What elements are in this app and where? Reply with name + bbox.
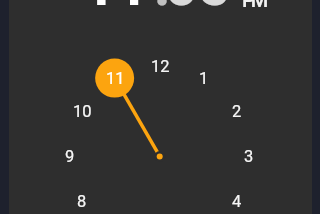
- staticText: PM: [242, 0, 265, 11]
- button[interactable]: PM: [242, 0, 265, 11]
- button[interactable]: 2: [217, 100, 257, 122]
- staticText: 10: [73, 102, 92, 121]
- button[interactable]: 9: [50, 145, 90, 167]
- button[interactable]: 11: [95, 67, 135, 89]
- button[interactable]: 1: [184, 67, 224, 89]
- staticText: 05: [165, 0, 231, 19]
- button[interactable]: 12: [140, 55, 180, 77]
- staticText: 3: [244, 147, 254, 166]
- button[interactable]: 8: [62, 190, 102, 212]
- button[interactable]: 10: [62, 100, 102, 122]
- button[interactable]: 4: [217, 190, 257, 212]
- staticText: 4: [232, 192, 242, 211]
- staticText: :: [154, 0, 171, 19]
- staticText: 11: [106, 69, 125, 88]
- button[interactable]: 11: [83, 0, 149, 19]
- staticText: 9: [65, 147, 75, 166]
- button[interactable]: 05: [165, 0, 231, 19]
- staticText: 2: [232, 102, 242, 121]
- staticText: 12: [151, 57, 170, 76]
- button[interactable]: 3: [229, 145, 269, 167]
- staticText: 8: [77, 192, 87, 211]
- staticText: 1: [199, 69, 209, 88]
- staticText: 11: [83, 0, 149, 19]
